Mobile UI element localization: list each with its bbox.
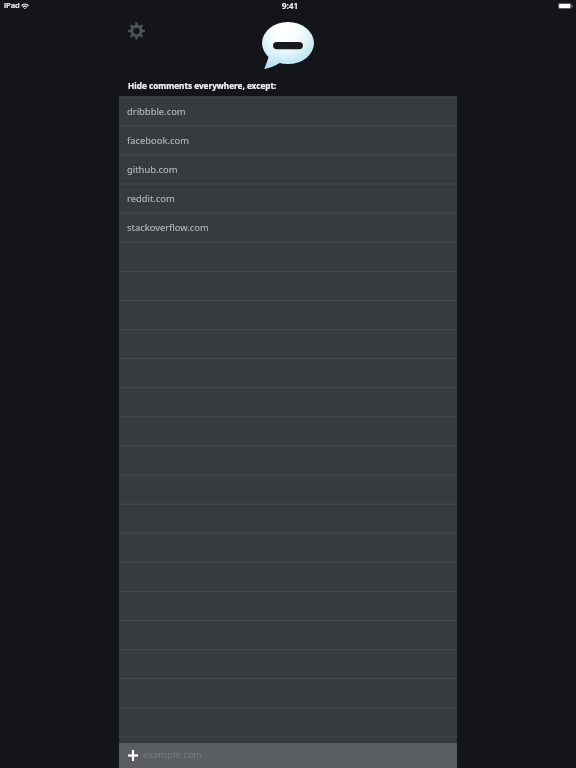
staticText: facebook.com	[127, 134, 189, 147]
button[interactable]: Hide comments	[262, 22, 314, 69]
button[interactable]: reddit.com	[119, 183, 457, 212]
button[interactable]: github.com	[119, 154, 457, 183]
staticText: iPad	[4, 0, 20, 10]
button[interactable]: stackoverflow.com	[119, 212, 457, 241]
staticText: example.com	[143, 748, 203, 761]
button[interactable]: example.com	[119, 743, 457, 768]
button[interactable]: Settings	[128, 22, 145, 40]
button[interactable]: dribbble.com	[119, 96, 457, 125]
staticText: 9:41	[2, 0, 576, 11]
staticText: dribbble.com	[127, 105, 186, 118]
staticText: github.com	[127, 163, 178, 176]
staticText: reddit.com	[127, 192, 175, 205]
staticText: stackoverflow.com	[127, 221, 209, 234]
staticText: Hide comments everywhere, except:	[128, 80, 277, 91]
button[interactable]: facebook.com	[119, 125, 457, 154]
